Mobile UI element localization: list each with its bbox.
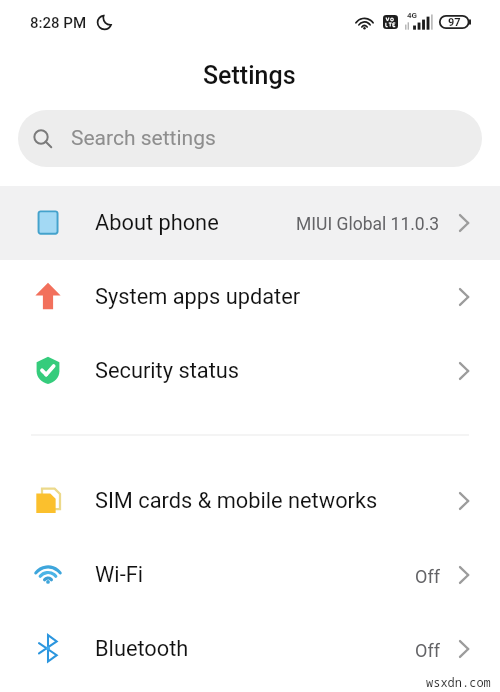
staticText: SIM cards & mobile networks	[95, 488, 378, 514]
staticText: 97	[448, 16, 461, 29]
staticText: MIUI Global 11.0.3	[296, 214, 440, 235]
staticText: 4G	[407, 11, 418, 20]
button[interactable]: Search	[18, 110, 482, 167]
staticText: Bluetooth	[95, 636, 189, 662]
staticText: Off	[415, 566, 440, 587]
button[interactable]: Wi-Fi	[0, 538, 500, 612]
button[interactable]: About phone	[0, 186, 500, 260]
button[interactable]: SIM cards & mobile networks	[0, 464, 500, 538]
button[interactable]: Bluetooth	[0, 612, 500, 686]
staticText: wsxdn.com	[426, 674, 491, 690]
staticText: 8:28 PM	[30, 14, 87, 32]
staticText: Settings	[203, 61, 296, 90]
staticText: Off	[415, 640, 440, 661]
button[interactable]: System apps updater	[0, 260, 500, 334]
button[interactable]: Security status	[0, 334, 500, 408]
staticText: Wi-Fi	[95, 562, 144, 588]
other: Search	[34, 130, 52, 148]
staticText: About phone	[95, 210, 219, 236]
staticText: Search settings	[71, 126, 216, 151]
staticText: System apps updater	[95, 284, 301, 310]
staticText: Security status	[95, 358, 240, 384]
